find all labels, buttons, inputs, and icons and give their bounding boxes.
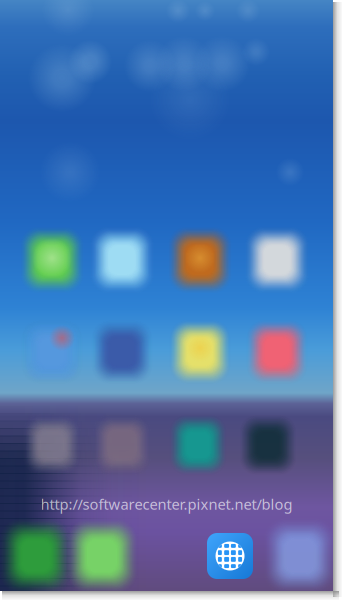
button[interactable]: Browser (207, 533, 253, 579)
staticText: http://softwarecenter.pixnet.net/blog (40, 494, 292, 514)
